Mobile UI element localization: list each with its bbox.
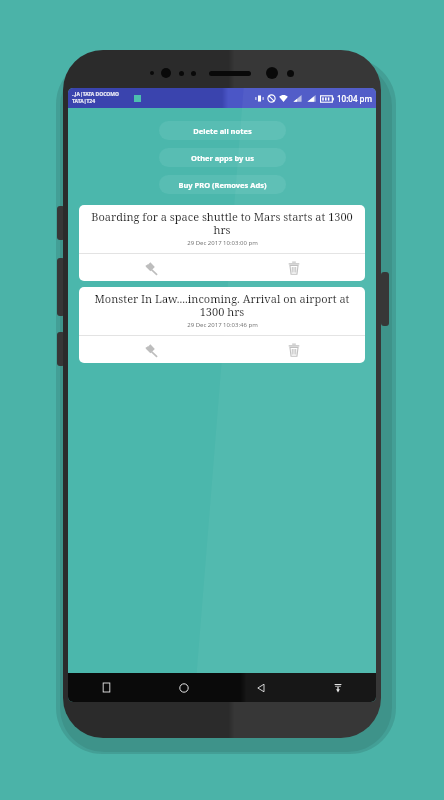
staticText: Buy PRO (Removes Ads) <box>178 180 267 190</box>
button[interactable]: Pin note <box>79 336 222 363</box>
staticText: 29 Dec 2017 10:03:00 pm <box>187 239 258 247</box>
button[interactable]: Downloads <box>299 673 376 702</box>
staticText: TATA|T24 <box>72 98 96 105</box>
staticText: 10:04 pm <box>337 93 373 104</box>
button[interactable]: Recent apps <box>68 673 145 702</box>
button[interactable]: Delete note <box>222 254 365 281</box>
button[interactable]: Delete all notes <box>159 121 286 140</box>
staticText: Monster In Law....incoming. Arrival on a… <box>85 291 359 319</box>
staticText: ..JA|TATA DOCOMO <box>72 91 119 98</box>
staticText: 29 Dec 2017 10:03:46 pm <box>187 321 258 329</box>
staticText: Delete all notes <box>193 126 252 136</box>
button[interactable]: Other apps by us <box>159 148 286 167</box>
button[interactable]: Pin note <box>79 254 222 281</box>
button[interactable]: Back <box>222 673 299 702</box>
button[interactable]: Monster In Law....incoming. Arrival on a… <box>79 287 365 363</box>
staticText: Other apps by us <box>191 153 254 163</box>
button[interactable]: Delete note <box>222 336 365 363</box>
staticText: Boarding for a space shuttle to Mars sta… <box>85 209 359 237</box>
button[interactable]: Boarding for a space shuttle to Mars sta… <box>79 205 365 281</box>
button[interactable]: Home <box>145 673 222 702</box>
button[interactable]: Buy PRO (Removes Ads) <box>159 175 286 194</box>
